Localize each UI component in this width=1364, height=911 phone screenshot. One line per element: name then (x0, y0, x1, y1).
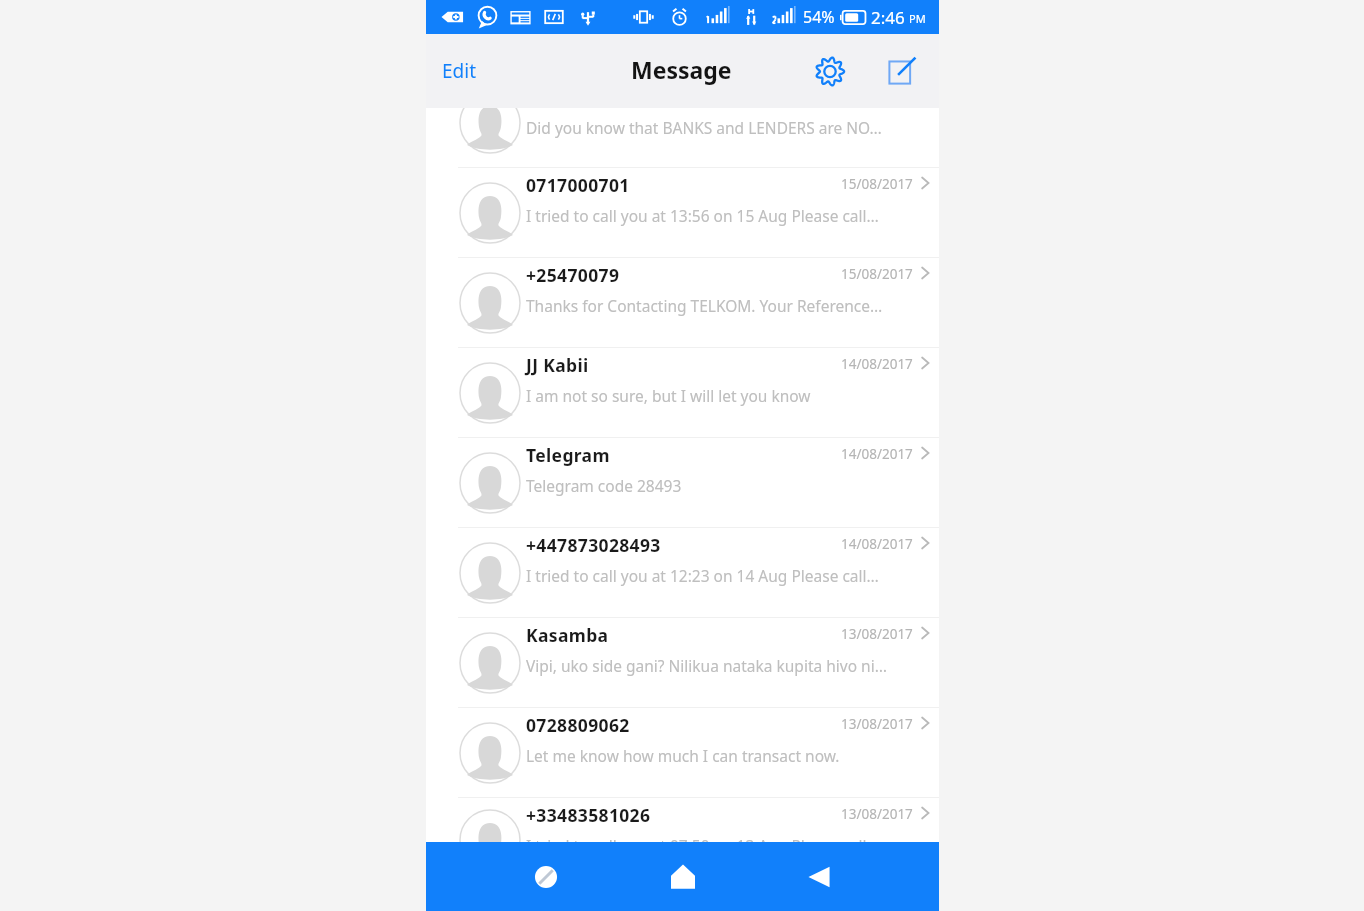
button[interactable]: JJ Kabii (426, 348, 939, 437)
staticText: I tried to call you at 07:50 on 13 Aug P… (526, 835, 879, 856)
staticText: 13/08/2017 (841, 625, 913, 643)
staticText: 0717000701 (526, 173, 841, 197)
staticText: +25470079 (526, 263, 841, 287)
staticText: Edit (442, 58, 477, 84)
staticText: 54% (803, 6, 835, 28)
button[interactable]: Kasamba (426, 618, 939, 707)
staticText: +33483581026 (526, 803, 841, 827)
staticText: Telegram code 28493 (526, 475, 682, 496)
staticText: 14/08/2017 (841, 535, 913, 553)
button[interactable]: Back (781, 842, 857, 911)
staticText: Message (631, 54, 732, 85)
button[interactable]: Home (645, 842, 721, 911)
staticText: JJ Kabii (526, 353, 841, 377)
button[interactable]: 0717000701 (426, 168, 939, 257)
button[interactable]: Did you know that BANKS and LENDERS are … (426, 108, 939, 167)
button[interactable]: +447873028493 (426, 528, 939, 617)
button[interactable]: Telegram (426, 438, 939, 527)
staticText: Telegram (526, 443, 841, 467)
staticText: Did you know that BANKS and LENDERS are … (526, 117, 882, 138)
staticText: 14/08/2017 (841, 445, 913, 463)
button[interactable]: +25470079 (426, 258, 939, 347)
button[interactable]: Recent apps (508, 842, 584, 911)
staticText: 13/08/2017 (841, 715, 913, 733)
staticText: Thanks for Contacting TELKOM. Your Refer… (526, 295, 883, 316)
staticText: 13/08/2017 (841, 805, 913, 823)
button[interactable]: Settings (807, 48, 853, 94)
button[interactable]: Compose message (879, 48, 925, 94)
staticText: 2:46 (871, 6, 905, 29)
staticText: 0728809062 (526, 713, 841, 737)
staticText: Kasamba (526, 623, 841, 647)
staticText: +447873028493 (526, 533, 841, 557)
staticText: Let me know how much I can transact now. (526, 745, 840, 766)
staticText: I am not so sure, but I will let you kno… (526, 385, 811, 406)
staticText: Vipi, uko side gani? Nilikua nataka kupi… (526, 655, 887, 676)
staticText: I tried to call you at 13:56 on 15 Aug P… (526, 205, 879, 226)
button[interactable]: Edit (434, 52, 485, 90)
staticText: 15/08/2017 (841, 265, 913, 283)
button[interactable]: 0728809062 (426, 708, 939, 797)
staticText: PM (909, 11, 926, 26)
staticText: 14/08/2017 (841, 355, 913, 373)
staticText: 15/08/2017 (841, 175, 913, 193)
button[interactable]: +33483581026 (426, 798, 939, 881)
staticText: I tried to call you at 12:23 on 14 Aug P… (526, 565, 879, 586)
